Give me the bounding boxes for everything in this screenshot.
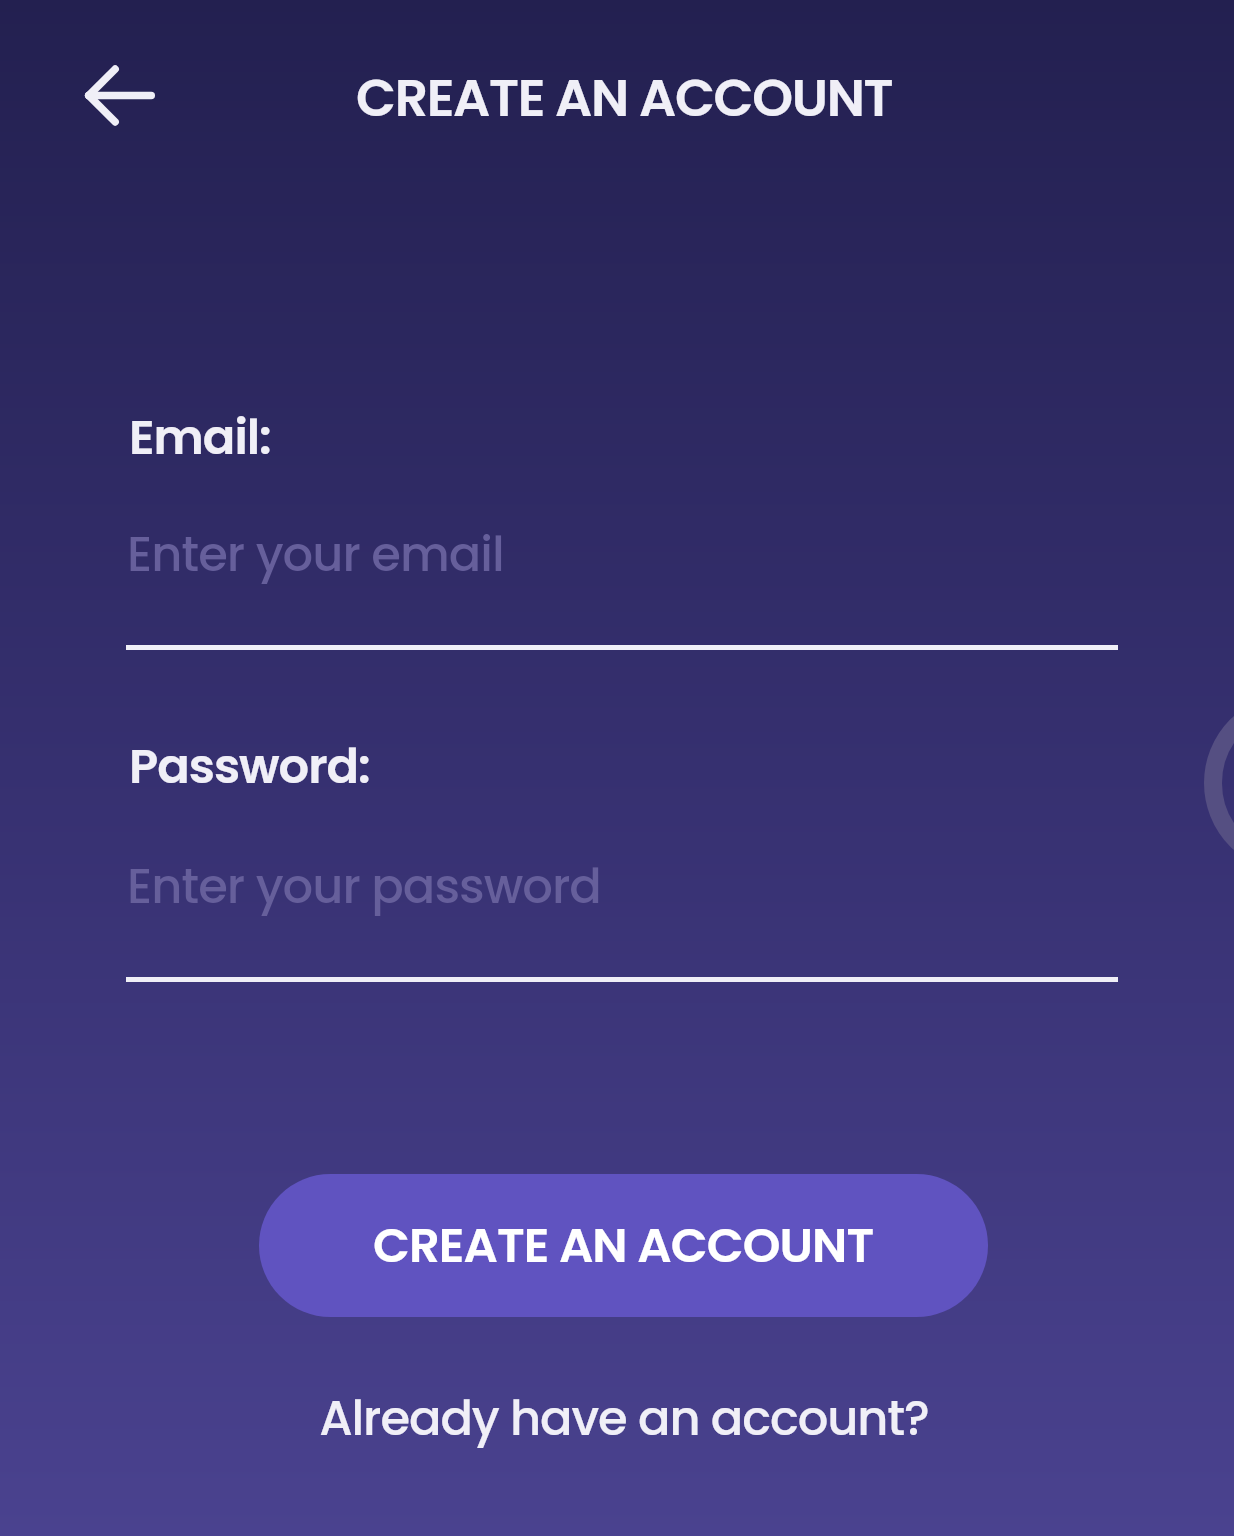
button[interactable]: Already have an account? — [304, 1380, 944, 1456]
button[interactable]: Enter your email — [126, 500, 1118, 650]
staticText: CREATE AN ACCOUNT — [356, 61, 893, 134]
staticText: Enter your email — [127, 521, 504, 588]
staticText: Email: — [129, 404, 271, 471]
staticText: Enter your password — [127, 853, 601, 920]
button[interactable]: Enter your password — [126, 832, 1118, 982]
button[interactable]: Back — [58, 33, 182, 157]
staticText: CREATE AN ACCOUNT — [373, 1212, 874, 1279]
staticText: Already have an account? — [319, 1385, 929, 1452]
button[interactable]: CREATE AN ACCOUNT — [259, 1174, 988, 1317]
staticText: Password: — [129, 733, 370, 800]
